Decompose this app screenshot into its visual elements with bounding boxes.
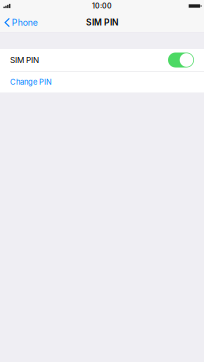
staticText: Phone — [12, 17, 38, 28]
staticText: Change PIN — [10, 77, 52, 87]
staticText: 10:00 — [92, 2, 112, 10]
button[interactable]: Phone — [0, 13, 43, 32]
button[interactable]: Change PIN — [0, 71, 204, 92]
button[interactable]: SIM PIN — [168, 52, 194, 67]
staticText: SIM PIN — [86, 17, 118, 28]
staticText: SIM PIN — [10, 55, 39, 65]
